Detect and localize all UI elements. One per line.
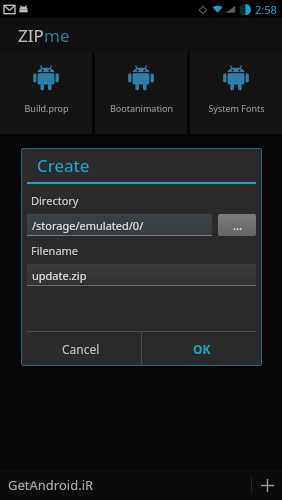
- button[interactable]: CREATE: [8, 475, 48, 495]
- button[interactable]: OK: [142, 332, 262, 366]
- button[interactable]: Add: [252, 470, 282, 500]
- button[interactable]: /storage/emulated/0/: [27, 214, 212, 236]
- button[interactable]: Build.prop: [0, 52, 92, 134]
- staticText: Bootanimation: [110, 102, 173, 114]
- button[interactable]: Browse: [218, 214, 256, 236]
- staticText: Build.prop: [24, 102, 69, 114]
- button[interactable]: Cancel: [21, 332, 141, 366]
- staticText: OK: [193, 341, 211, 357]
- staticText: System Fonts: [208, 102, 265, 114]
- button[interactable]: update.zip: [27, 264, 256, 286]
- staticText: CREATE: [12, 479, 44, 491]
- button[interactable]: Bootanimation: [95, 52, 187, 134]
- staticText: update.zip: [32, 268, 87, 283]
- staticText: me: [44, 24, 70, 47]
- staticText: Directory: [31, 193, 79, 208]
- staticText: GetAndroid.iR: [8, 476, 94, 494]
- staticText: ZIP: [18, 24, 44, 47]
- staticText: 2:58: [255, 2, 277, 17]
- staticText: Filename: [31, 243, 79, 258]
- button[interactable]: System Fonts: [190, 52, 282, 134]
- staticText: ...: [233, 218, 242, 233]
- staticText: Cancel: [62, 341, 100, 357]
- staticText: /storage/emulated/0/: [32, 218, 144, 233]
- staticText: Create: [37, 154, 90, 177]
